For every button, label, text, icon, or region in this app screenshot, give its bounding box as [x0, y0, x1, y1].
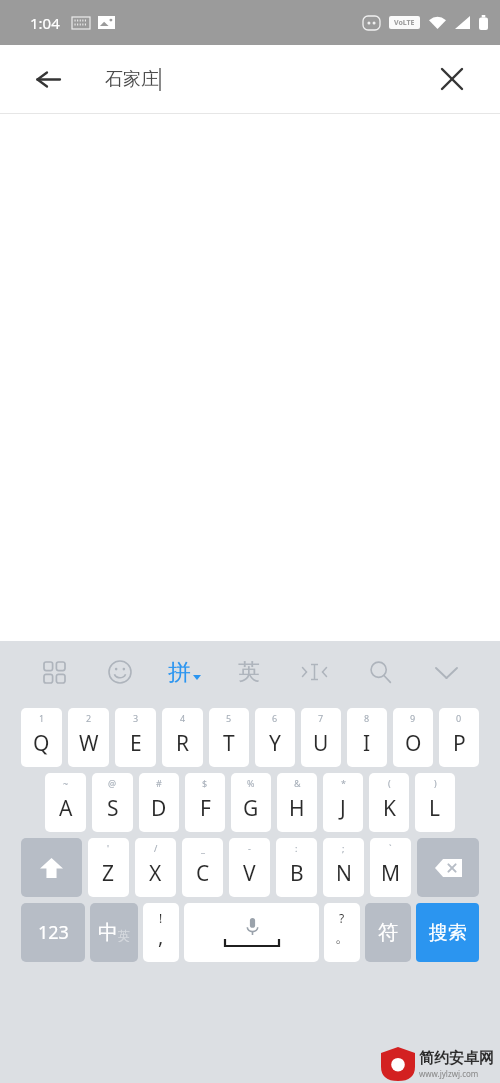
staticText: ': [107, 842, 110, 854]
button[interactable]: 6: [255, 708, 295, 767]
button[interactable]: Clear: [428, 55, 476, 103]
button[interactable]: 123: [21, 903, 85, 962]
button[interactable]: -: [229, 838, 270, 897]
button[interactable]: ;: [323, 838, 364, 897]
staticText: VoLTE: [394, 18, 415, 28]
button[interactable]: 7: [301, 708, 341, 767]
button[interactable]: Keyboard layouts: [34, 652, 74, 692]
staticText: $: [202, 777, 208, 789]
staticText: _: [201, 842, 205, 854]
button[interactable]: 0: [439, 708, 479, 767]
staticText: 8: [364, 712, 370, 724]
button[interactable]: ): [415, 773, 455, 832]
button[interactable]: Shift: [21, 838, 82, 897]
staticText: 3: [133, 712, 139, 724]
staticText: 中: [98, 920, 118, 945]
button[interactable]: !: [143, 903, 179, 962]
button[interactable]: ~: [45, 773, 86, 832]
staticText: 1: [39, 712, 45, 724]
staticText: L: [429, 794, 441, 823]
staticText: P: [453, 729, 466, 758]
staticText: &: [294, 777, 301, 789]
staticText: 5: [226, 712, 232, 724]
staticText: Z: [102, 859, 115, 888]
staticText: 0: [456, 712, 462, 724]
staticText: F: [200, 794, 211, 823]
staticText: 。: [335, 928, 350, 947]
staticText: 简约安卓网: [419, 1049, 494, 1068]
button[interactable]: @: [92, 773, 133, 832]
button[interactable]: %: [231, 773, 271, 832]
staticText: K: [383, 794, 396, 823]
staticText: J: [340, 794, 346, 823]
staticText: #: [156, 777, 162, 789]
button[interactable]: 英: [229, 652, 269, 692]
staticText: 拼: [168, 658, 191, 687]
button[interactable]: Back: [24, 55, 72, 103]
button[interactable]: Space: [184, 903, 319, 962]
button[interactable]: &: [277, 773, 317, 832]
staticText: -: [248, 842, 251, 854]
button[interactable]: Backspace: [417, 838, 479, 897]
button[interactable]: /: [135, 838, 176, 897]
staticText: C: [196, 859, 210, 888]
button[interactable]: $: [185, 773, 225, 832]
staticText: M: [381, 859, 401, 888]
button[interactable]: _: [182, 838, 223, 897]
button[interactable]: 8: [347, 708, 387, 767]
staticText: 7: [318, 712, 324, 724]
button[interactable]: 符: [365, 903, 411, 962]
button[interactable]: Emoji: [100, 652, 140, 692]
staticText: T: [223, 729, 235, 758]
staticText: /: [154, 842, 158, 854]
staticText: ;: [342, 842, 345, 854]
staticText: H: [289, 794, 305, 823]
staticText: D: [151, 794, 167, 823]
staticText: 9: [410, 712, 416, 724]
staticText: V: [243, 859, 256, 888]
staticText: (: [388, 777, 391, 789]
staticText: N: [336, 859, 352, 888]
staticText: *: [341, 777, 346, 789]
staticText: W: [79, 729, 99, 758]
button[interactable]: Search: [360, 652, 400, 692]
button[interactable]: (: [369, 773, 409, 832]
button[interactable]: Pinyin input: [166, 658, 203, 687]
staticText: `: [389, 842, 392, 854]
button[interactable]: 9: [393, 708, 433, 767]
staticText: 符: [378, 920, 398, 945]
staticText: ?: [339, 910, 345, 926]
button[interactable]: Hide keyboard: [426, 652, 466, 692]
button[interactable]: :: [276, 838, 317, 897]
staticText: A: [59, 794, 73, 823]
staticText: !: [159, 910, 163, 926]
staticText: 123: [38, 920, 69, 945]
staticText: Q: [33, 729, 50, 758]
button[interactable]: 3: [115, 708, 156, 767]
staticText: %: [247, 777, 255, 789]
button[interactable]: Move cursor: [294, 652, 334, 692]
button[interactable]: ?: [324, 903, 360, 962]
button[interactable]: ': [88, 838, 129, 897]
button[interactable]: 4: [162, 708, 203, 767]
staticText: E: [130, 729, 142, 758]
button[interactable]: 5: [209, 708, 249, 767]
button[interactable]: 2: [68, 708, 109, 767]
button[interactable]: 中: [90, 903, 138, 962]
staticText: S: [107, 794, 119, 823]
button[interactable]: *: [323, 773, 363, 832]
staticText: ~: [63, 777, 69, 789]
button[interactable]: 1: [21, 708, 62, 767]
staticText: ,: [158, 923, 164, 950]
button[interactable]: 搜索: [416, 903, 479, 962]
staticText: 1:04: [30, 13, 60, 33]
staticText: O: [405, 729, 422, 758]
button[interactable]: #: [139, 773, 179, 832]
staticText: www.jylzwj.com: [419, 1068, 479, 1079]
button[interactable]: `: [370, 838, 411, 897]
staticText: 石家庄: [105, 68, 159, 91]
staticText: 英: [238, 658, 260, 686]
staticText: Y: [269, 729, 281, 758]
staticText: U: [313, 729, 329, 758]
staticText: 6: [272, 712, 278, 724]
